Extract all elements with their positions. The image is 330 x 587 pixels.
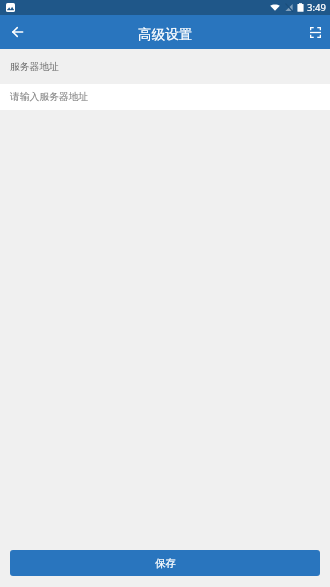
button[interactable]: 请输入服务器地址 (0, 84, 330, 110)
staticText: 保存 (155, 557, 176, 570)
button[interactable]: Back (0, 15, 34, 49)
staticText: 高级设置 (138, 26, 193, 43)
staticText: 3:49 (307, 1, 326, 14)
button[interactable]: 保存 (10, 550, 320, 576)
staticText: 服务器地址 (10, 61, 59, 73)
button[interactable]: Scan QR code (300, 15, 330, 49)
staticText: 请输入服务器地址 (10, 91, 89, 103)
